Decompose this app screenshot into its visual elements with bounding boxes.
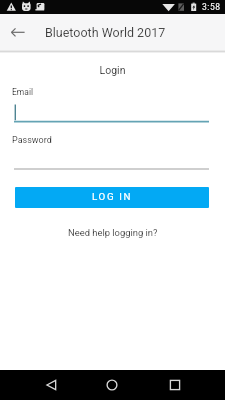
button[interactable]: Navigate up (0, 14, 36, 50)
staticText: Need help logging in? (68, 227, 158, 238)
staticText: LOG IN (92, 191, 133, 202)
button[interactable]: Recent apps (160, 370, 190, 400)
staticText: Bluetooth World 2017 (45, 25, 166, 40)
staticText: Password (12, 135, 52, 146)
button[interactable]: Home (97, 370, 127, 400)
staticText: Email (12, 87, 34, 97)
button[interactable]: Email input (0, 98, 225, 124)
button[interactable]: LOG IN (15, 187, 209, 208)
staticText: 3:58 (202, 2, 221, 12)
button[interactable]: Need help logging in? (0, 227, 225, 238)
button[interactable]: Back (37, 370, 67, 400)
button[interactable]: Password input (0, 146, 225, 172)
staticText: Login (0, 64, 225, 76)
